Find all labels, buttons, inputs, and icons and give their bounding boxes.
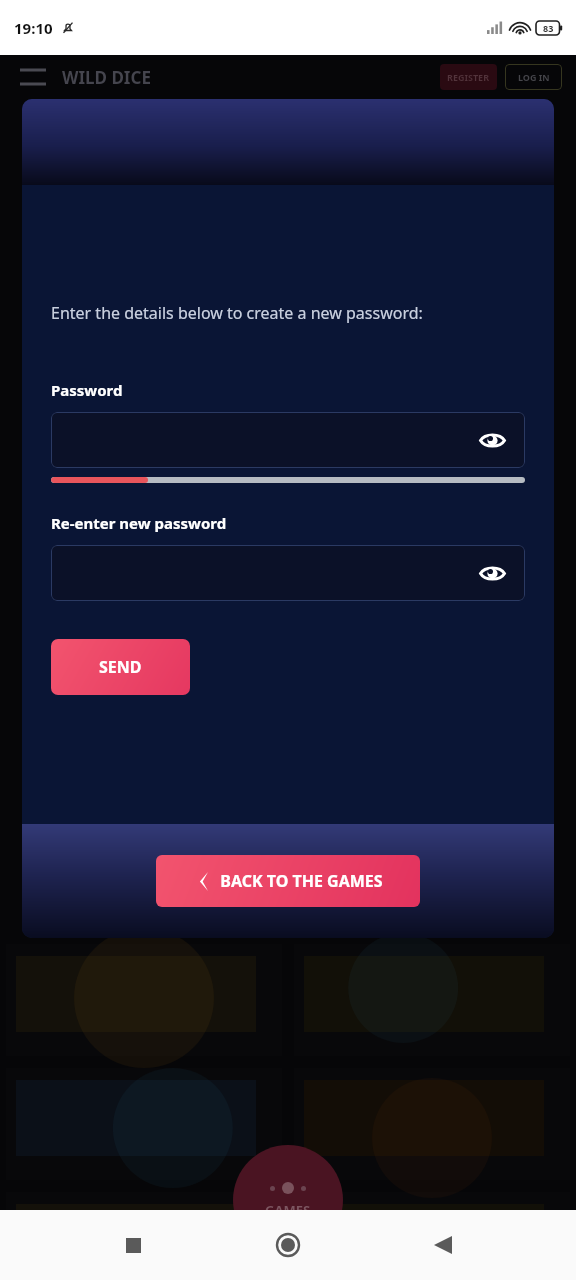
staticText: BACK TO THE GAMES [220,870,383,892]
button[interactable]: GAMES [233,1145,343,1255]
staticText: LOG IN [518,71,550,83]
button[interactable]: BACK TO THE GAMES [156,855,420,907]
staticText: Re-enter new password [51,513,227,533]
staticText: GAMES [265,1201,311,1219]
button[interactable]: LOG IN [505,64,562,90]
button[interactable]: Back [421,1223,465,1267]
staticText: 83 [543,22,554,34]
button[interactable]: Show password [51,545,525,601]
button[interactable]: Show password [475,423,509,457]
button[interactable]: Menu [14,58,52,96]
staticText: WILD DICE [62,66,151,89]
staticText: Password [51,380,123,400]
button[interactable]: REGISTER [440,64,497,90]
button[interactable]: Show password [475,556,509,590]
button[interactable]: Show password [51,412,525,468]
staticText: SEND [99,656,142,678]
button[interactable]: SEND [51,639,190,695]
button[interactable]: Home [266,1223,310,1267]
staticText: REGISTER [447,71,490,83]
staticText: Enter the details below to create a new … [51,302,423,324]
button[interactable]: Recents [111,1223,155,1267]
staticText: 19:10 [14,18,53,38]
